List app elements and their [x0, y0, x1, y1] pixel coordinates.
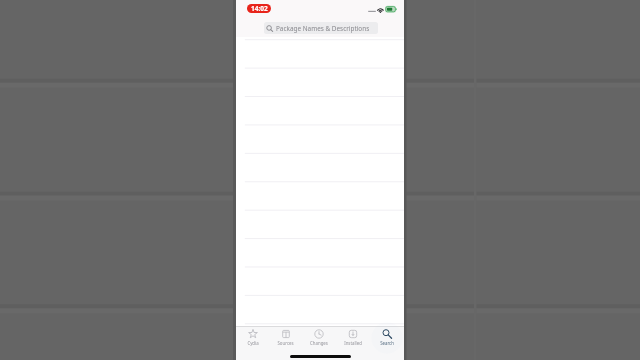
staticText: Cydia — [247, 340, 259, 346]
button[interactable]: Sources — [269, 327, 302, 360]
staticText: Package Names & Descriptions — [276, 24, 370, 33]
staticText: Changes — [310, 340, 328, 346]
staticText: Installed — [344, 340, 362, 346]
button[interactable]: Cydia — [236, 327, 269, 360]
button[interactable]: Installed — [336, 327, 370, 360]
button[interactable]: Changes — [302, 327, 336, 360]
button[interactable]: Package Names & Descriptions — [264, 22, 378, 34]
other: Signal, Wi-Fi and battery status — [368, 2, 398, 14]
button[interactable]: Return to call, 14:02 — [247, 4, 271, 13]
staticText: Search — [380, 340, 394, 346]
button[interactable]: Search — [370, 327, 404, 360]
staticText: 14:02 — [251, 4, 268, 13]
staticText: Sources — [277, 340, 294, 346]
